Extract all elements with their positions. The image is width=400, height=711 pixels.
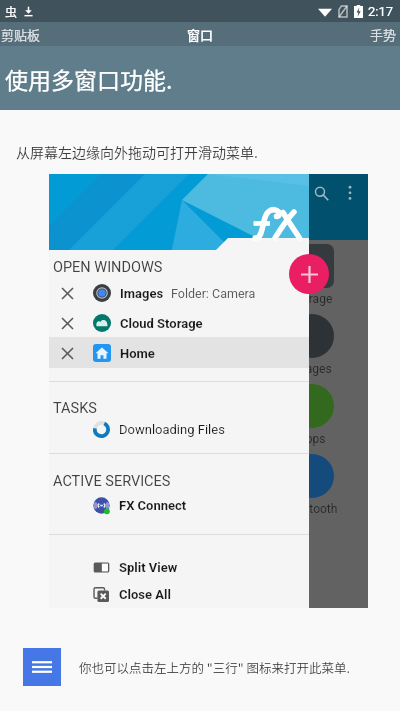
button[interactable]: Close Home bbox=[49, 338, 309, 368]
button[interactable]: Close Cloud Storage bbox=[49, 308, 309, 338]
other: Search bbox=[314, 186, 329, 201]
button[interactable]: Open navigation menu bbox=[23, 648, 61, 686]
staticText: TASKS bbox=[53, 400, 97, 417]
staticText: Cloud Storage bbox=[120, 316, 203, 331]
staticText: Images bbox=[120, 286, 164, 301]
button[interactable]: Close Images bbox=[49, 278, 309, 308]
other: Close Home bbox=[62, 348, 73, 359]
staticText: 窗口 bbox=[187, 25, 214, 44]
staticText: Images bbox=[292, 362, 332, 376]
other: More options bbox=[348, 185, 352, 201]
staticText: 使用多窗口功能. bbox=[5, 62, 173, 95]
staticText: 2:17 bbox=[368, 4, 394, 19]
staticText: 从屏幕左边缘向外拖动可打开滑动菜单. bbox=[16, 142, 258, 162]
button[interactable]: Add bbox=[289, 254, 329, 294]
button[interactable]: Downloading Files bbox=[49, 417, 309, 441]
button[interactable]: Split View bbox=[49, 555, 309, 579]
button[interactable]: 剪贴板 bbox=[0, 22, 86, 46]
staticText: 你也可以点击左上方的 "三行" 图标来打开此菜单. bbox=[79, 658, 350, 676]
staticText: Storage bbox=[291, 292, 333, 306]
button[interactable]: 手势 bbox=[318, 22, 400, 46]
staticText: 剪贴板 bbox=[1, 25, 41, 44]
staticText: Bluetooth bbox=[286, 502, 338, 516]
staticText: Close All bbox=[119, 587, 171, 602]
staticText: Downloading Files bbox=[119, 422, 225, 437]
staticText: ACTIVE SERVICES bbox=[53, 473, 171, 490]
staticText: FX Connect bbox=[119, 498, 187, 513]
other: Close Images bbox=[62, 288, 73, 299]
staticText: Split View bbox=[119, 560, 178, 575]
staticText: Folder: Camera bbox=[171, 286, 256, 301]
staticText: 虫 bbox=[5, 3, 18, 20]
staticText: OPEN WINDOWS bbox=[53, 259, 163, 276]
staticText: 手势 bbox=[370, 25, 397, 44]
button[interactable]: 窗口 bbox=[135, 22, 265, 46]
button[interactable]: FX Connect bbox=[49, 493, 309, 517]
button[interactable]: Close All bbox=[49, 582, 309, 606]
staticText: Apps bbox=[298, 432, 326, 446]
other: Close Cloud Storage bbox=[62, 318, 73, 329]
staticText: Home bbox=[120, 346, 155, 361]
